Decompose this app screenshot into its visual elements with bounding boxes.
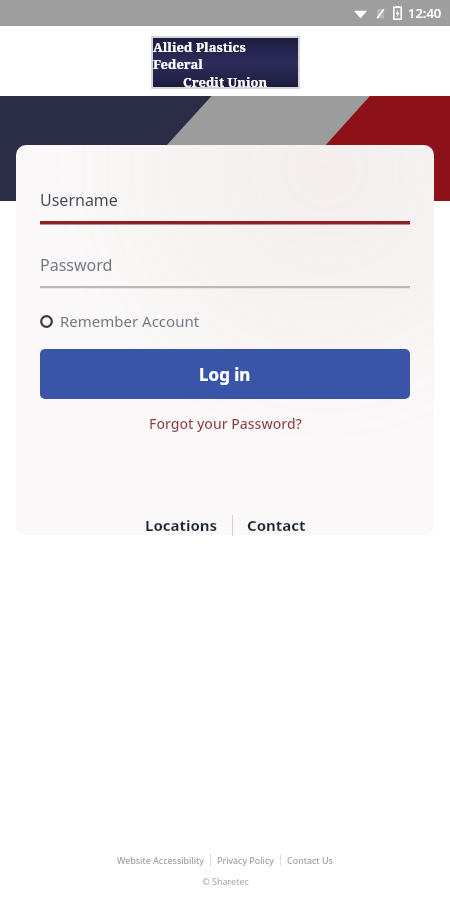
staticText: Password [40, 254, 113, 276]
staticText: Username [40, 189, 118, 211]
staticText: Locations [145, 515, 218, 535]
button[interactable]: Username [40, 189, 410, 224]
staticText: Contact [247, 515, 306, 535]
staticText: Website Accessibility [117, 854, 204, 866]
button[interactable]: Password [40, 254, 410, 289]
staticText: Remember Account [60, 311, 200, 331]
button[interactable]: Contact Us [281, 851, 339, 869]
staticText: Forgot your Password? [149, 414, 302, 433]
button[interactable]: Contact [233, 510, 320, 540]
button[interactable]: Forgot your Password? [40, 414, 410, 433]
other: No SIM [374, 7, 387, 20]
button[interactable]: Log in [40, 349, 410, 399]
other: Wi-Fi [353, 6, 368, 21]
staticText: 12:40 [408, 4, 442, 22]
staticText: Privacy Policy [217, 854, 274, 866]
button[interactable]: Website Accessibility [111, 851, 210, 869]
button[interactable]: Privacy Policy [211, 851, 280, 869]
button[interactable]: Locations [131, 510, 232, 540]
staticText: Contact Us [287, 854, 333, 866]
staticText: © Sharetec [202, 875, 249, 887]
staticText: Allied Plastics Federal [153, 38, 298, 73]
button[interactable]: Remember Account [40, 311, 200, 331]
staticText: Credit Union [183, 73, 268, 87]
other: Battery charging [393, 6, 402, 20]
staticText: Log in [199, 363, 251, 386]
